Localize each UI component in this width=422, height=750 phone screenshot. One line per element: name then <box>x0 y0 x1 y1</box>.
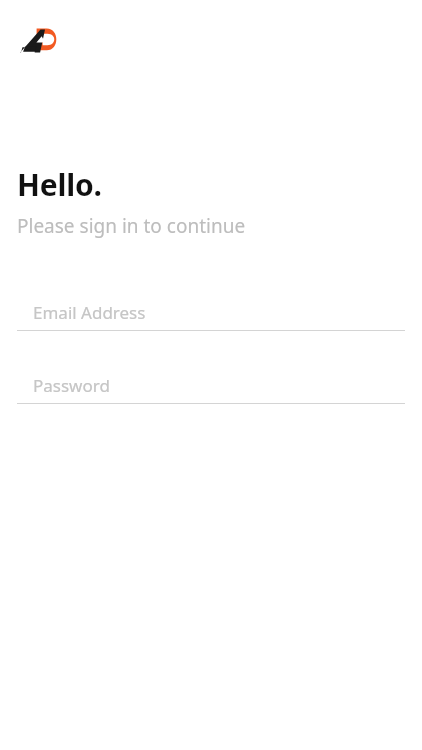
button[interactable]: AD logo <box>21 28 60 54</box>
staticText: Hello. <box>17 164 102 205</box>
staticText: Email Address <box>33 301 146 324</box>
button[interactable]: Password <box>17 367 405 404</box>
button[interactable]: Email Address <box>17 294 405 331</box>
staticText: Please sign in to continue <box>17 213 246 239</box>
staticText: Password <box>33 374 110 397</box>
